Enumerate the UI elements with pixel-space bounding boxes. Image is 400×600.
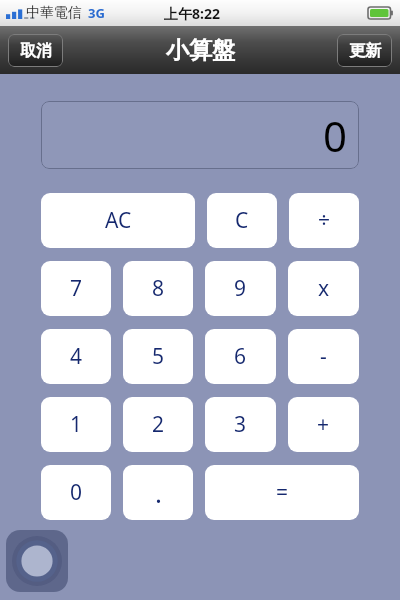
button[interactable]: 0 bbox=[41, 465, 111, 520]
button[interactable]: 1 bbox=[41, 397, 111, 452]
button[interactable]: 4 bbox=[41, 329, 111, 384]
button[interactable]: 8 bbox=[123, 261, 193, 316]
button[interactable]: - bbox=[288, 329, 359, 384]
staticText: 更新 bbox=[349, 41, 381, 61]
staticText: 小算盤 bbox=[166, 36, 235, 65]
button[interactable]: x bbox=[288, 261, 359, 316]
button[interactable]: + bbox=[288, 397, 359, 452]
staticText: 0 bbox=[70, 478, 83, 507]
staticText: 5 bbox=[152, 342, 165, 371]
button[interactable]: 3 bbox=[205, 397, 276, 452]
staticText: 7 bbox=[70, 274, 83, 303]
staticText: 3G bbox=[88, 4, 105, 22]
button[interactable]: C bbox=[207, 193, 277, 248]
staticText: 取消 bbox=[20, 41, 52, 61]
staticText: 8 bbox=[152, 274, 165, 303]
button[interactable]: 5 bbox=[123, 329, 193, 384]
button[interactable]: AssistiveTouch bbox=[6, 530, 68, 592]
button[interactable]: ÷ bbox=[289, 193, 359, 248]
button[interactable]: Update bbox=[337, 34, 392, 67]
staticText: = bbox=[276, 478, 289, 507]
staticText: C bbox=[235, 206, 249, 235]
staticText: 0 bbox=[322, 107, 347, 164]
button[interactable]: 6 bbox=[205, 329, 276, 384]
button[interactable]: = bbox=[205, 465, 359, 520]
staticText: 上午8:22 bbox=[164, 4, 220, 23]
staticText: ÷ bbox=[318, 206, 331, 235]
button[interactable]: Cancel bbox=[8, 34, 63, 67]
staticText: 9 bbox=[234, 274, 247, 303]
staticText: 4 bbox=[70, 342, 83, 371]
staticText: 1 bbox=[70, 410, 83, 439]
button[interactable]: 7 bbox=[41, 261, 111, 316]
button[interactable]: AC bbox=[41, 193, 195, 248]
staticText: 2 bbox=[152, 410, 165, 439]
button[interactable]: . bbox=[123, 465, 193, 520]
staticText: AC bbox=[105, 206, 132, 235]
staticText: + bbox=[317, 410, 330, 439]
staticText: 6 bbox=[234, 342, 247, 371]
staticText: x bbox=[318, 274, 330, 303]
staticText: . bbox=[155, 475, 162, 510]
button[interactable]: 9 bbox=[205, 261, 276, 316]
staticText: - bbox=[320, 342, 327, 371]
staticText: 中華電信 bbox=[26, 4, 82, 22]
button[interactable]: 2 bbox=[123, 397, 193, 452]
staticText: 3 bbox=[234, 410, 247, 439]
